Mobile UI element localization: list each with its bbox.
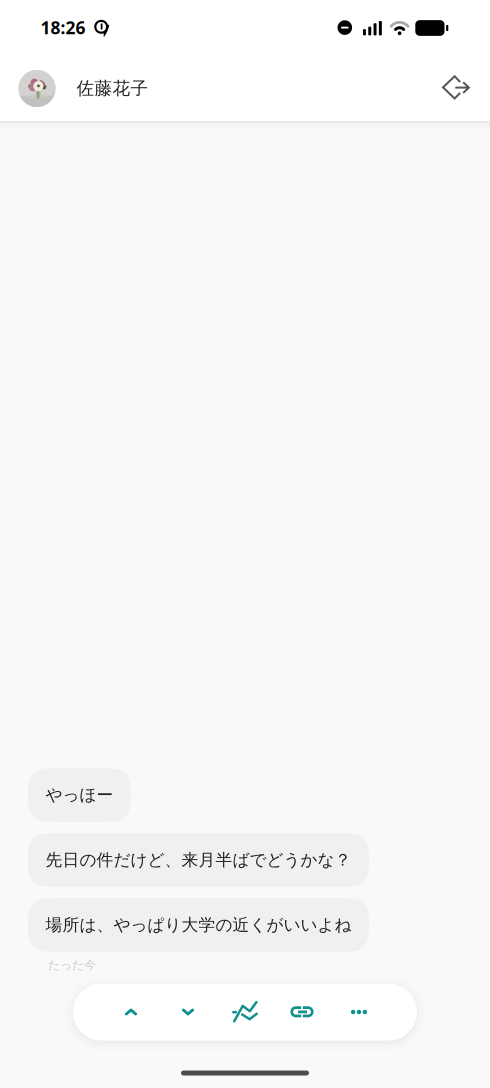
staticText: 佐藤花子	[76, 77, 148, 100]
button[interactable]: Markup	[216, 983, 273, 1040]
button[interactable]: Scroll down	[159, 983, 216, 1040]
staticText: たった今	[48, 957, 96, 972]
staticText: 場所は、やっぱり大学の近くがいいよね	[45, 914, 351, 935]
button[interactable]: Leave conversation	[427, 61, 483, 117]
staticText: やっほー	[45, 784, 113, 805]
button[interactable]: More options	[330, 983, 387, 1040]
button[interactable]: Scroll up	[102, 983, 159, 1040]
button[interactable]: 佐藤花子	[0, 56, 260, 121]
staticText: 先日の件だけど、来月半ばでどうかな？	[45, 849, 351, 870]
staticText: 18:26	[40, 16, 85, 39]
button[interactable]: Insert link	[273, 983, 330, 1040]
